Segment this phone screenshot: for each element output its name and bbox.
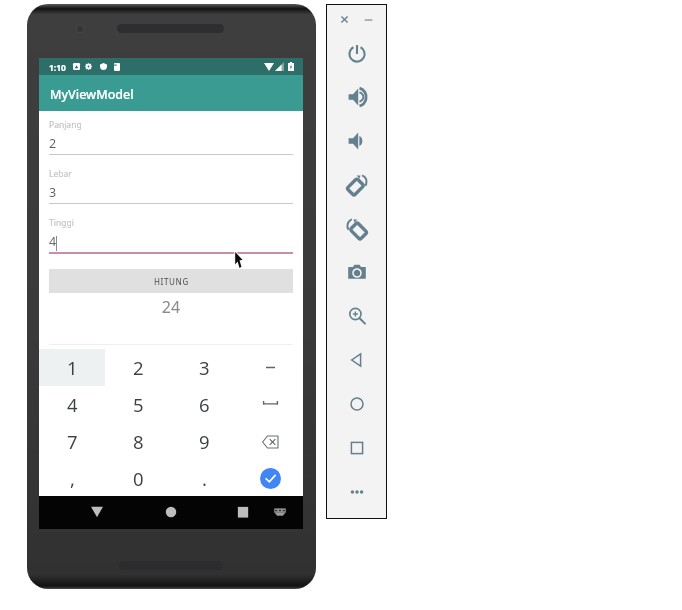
- staticText: MyViewModel: [50, 86, 134, 103]
- button[interactable]: Minimize: [363, 14, 374, 25]
- staticText: .: [202, 466, 207, 491]
- button[interactable]: Close: [339, 14, 350, 25]
- staticText: 5: [133, 392, 144, 417]
- button[interactable]: Back: [88, 503, 106, 521]
- button[interactable]: dash: [237, 349, 303, 386]
- button[interactable]: 6: [171, 386, 237, 423]
- staticText: 2: [49, 135, 57, 152]
- button[interactable]: Home: [344, 391, 370, 417]
- staticText: 9: [199, 429, 210, 454]
- staticText: Lebar: [49, 168, 72, 180]
- button[interactable]: Home: [162, 503, 180, 521]
- staticText: 0: [133, 466, 144, 491]
- staticText: 4: [49, 233, 57, 250]
- button[interactable]: 4: [39, 386, 105, 423]
- staticText: Panjang: [49, 119, 82, 131]
- button[interactable]: Volume down: [344, 128, 370, 154]
- staticText: HITUNG: [154, 276, 189, 287]
- staticText: 3: [49, 184, 57, 201]
- button[interactable]: 0: [105, 460, 171, 497]
- staticText: Tinggi: [49, 217, 74, 229]
- button[interactable]: 7: [39, 423, 105, 460]
- button[interactable]: 2: [105, 349, 171, 386]
- button[interactable]: 3: [171, 349, 237, 386]
- button[interactable]: Volume up: [344, 84, 370, 110]
- button[interactable]: Zoom: [344, 303, 370, 329]
- staticText: 4: [67, 392, 78, 417]
- button[interactable]: space: [237, 386, 303, 423]
- button[interactable]: 8: [105, 423, 171, 460]
- staticText: 1: [67, 355, 78, 380]
- button[interactable]: Recents: [234, 503, 252, 521]
- staticText: ,: [70, 466, 75, 491]
- staticText: 2: [133, 355, 144, 380]
- button[interactable]: 5: [105, 386, 171, 423]
- button[interactable]: 9: [171, 423, 237, 460]
- button[interactable]: Rotate left: [344, 172, 370, 198]
- button[interactable]: Overview: [344, 435, 370, 461]
- button[interactable]: Power: [344, 40, 370, 66]
- button[interactable]: period: [171, 460, 237, 497]
- button[interactable]: Rotate right: [344, 216, 370, 242]
- button[interactable]: 1: [39, 349, 105, 386]
- staticText: 24: [39, 296, 303, 318]
- button[interactable]: HITUNG: [49, 269, 293, 293]
- staticText: 3: [199, 355, 210, 380]
- button[interactable]: done: [237, 460, 303, 497]
- staticText: 6: [199, 392, 210, 417]
- button[interactable]: Screenshot: [344, 259, 370, 285]
- button[interactable]: backspace: [237, 423, 303, 460]
- button[interactable]: Back: [344, 347, 370, 373]
- staticText: 7: [67, 429, 78, 454]
- staticText: 1:10: [49, 62, 66, 74]
- button[interactable]: comma: [39, 460, 105, 497]
- button[interactable]: Switch keyboard: [271, 503, 289, 521]
- staticText: 8: [133, 429, 144, 454]
- button[interactable]: More: [344, 479, 370, 505]
